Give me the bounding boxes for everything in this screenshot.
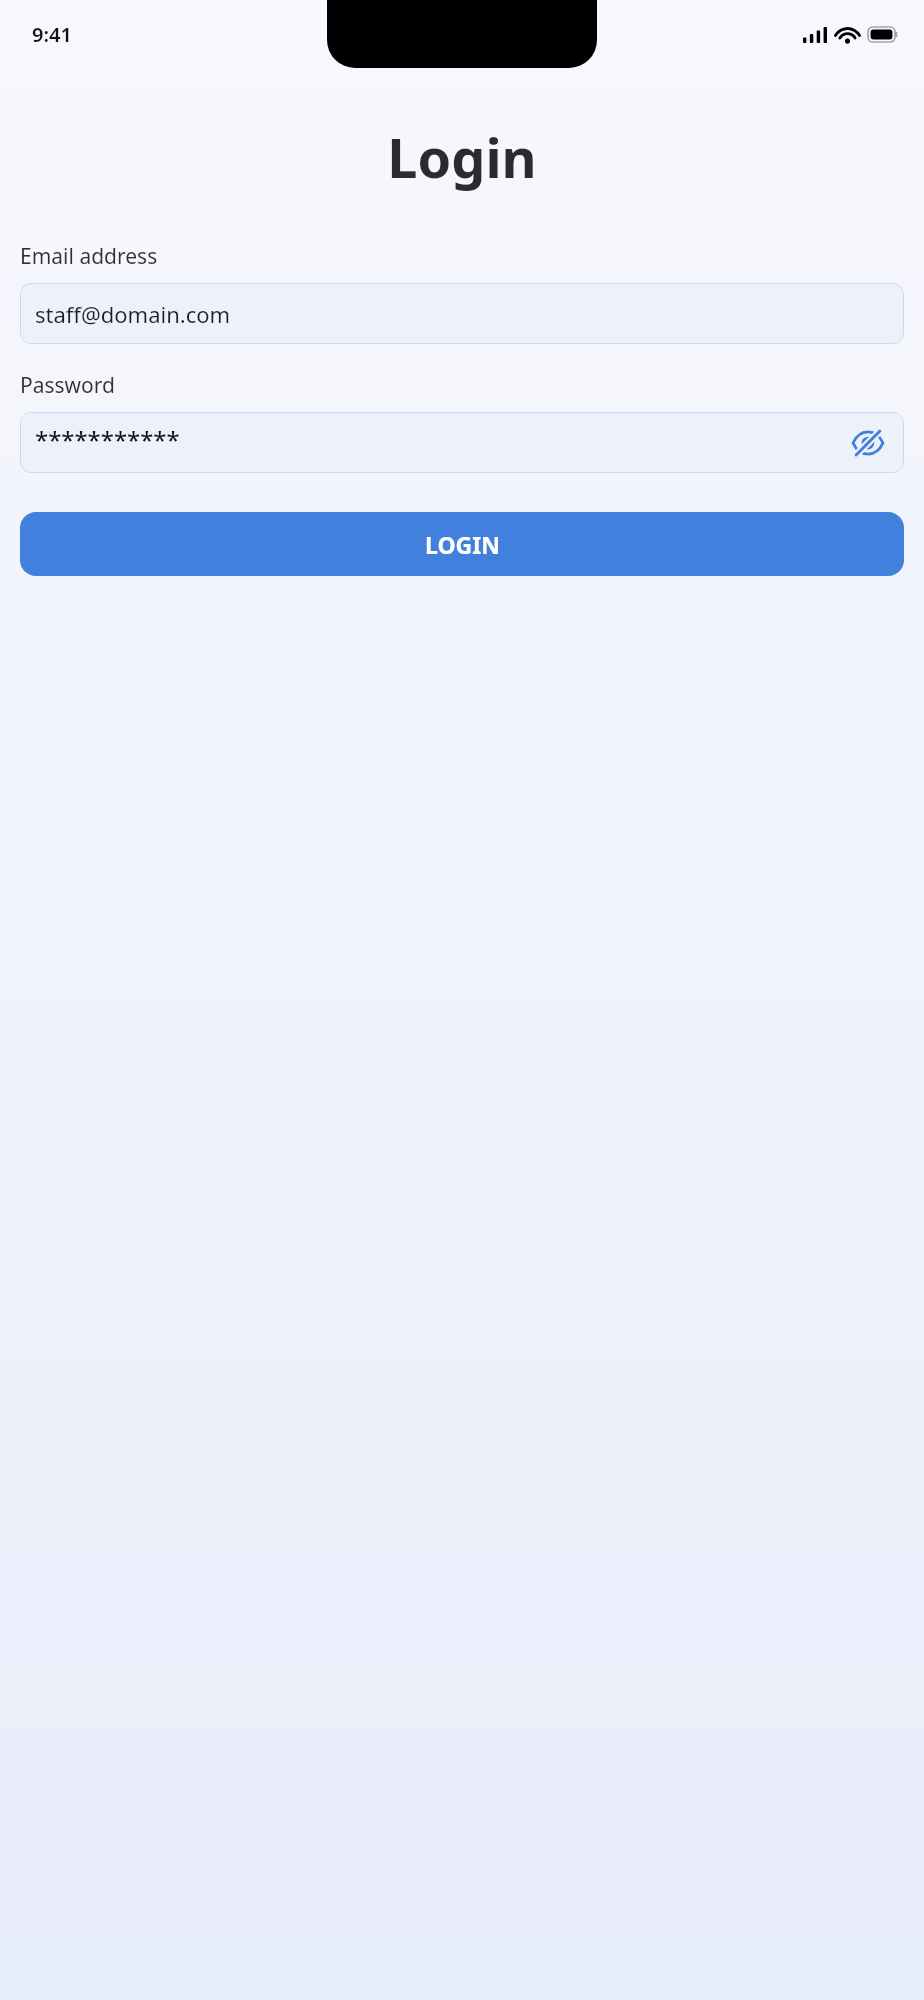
staticText: LOGIN (425, 529, 500, 560)
button[interactable]: Hide password (846, 421, 890, 465)
staticText: Password (20, 371, 115, 400)
staticText: staff@domain.com (35, 299, 231, 329)
button[interactable]: staff@domain.com (20, 283, 904, 344)
staticText: Email address (20, 242, 158, 271)
button[interactable]: *********** (20, 412, 904, 473)
staticText: Login (0, 120, 924, 194)
staticText: 9:41 (32, 21, 72, 48)
staticText: *********** (35, 423, 180, 456)
button[interactable]: LOGIN (20, 512, 904, 576)
